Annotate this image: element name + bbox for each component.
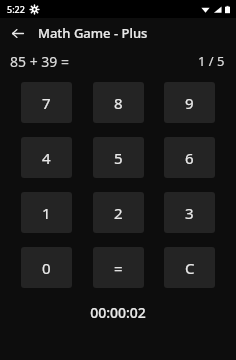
button[interactable]: 4 bbox=[21, 137, 72, 178]
staticText: 85 + 39 = bbox=[10, 52, 69, 71]
staticText: 0 bbox=[42, 258, 51, 278]
button[interactable]: C bbox=[164, 247, 215, 288]
staticText: 5 bbox=[114, 148, 123, 168]
staticText: 3 bbox=[185, 203, 194, 223]
staticText: Math Game - Plus bbox=[38, 24, 148, 42]
button[interactable]: 0 bbox=[21, 247, 72, 288]
staticText: = bbox=[114, 258, 123, 278]
button[interactable]: 6 bbox=[164, 137, 215, 178]
button[interactable]: 1 bbox=[21, 192, 72, 233]
staticText: 7 bbox=[42, 93, 51, 113]
button[interactable]: 9 bbox=[164, 82, 215, 123]
button[interactable]: 5 bbox=[93, 137, 144, 178]
button[interactable]: 7 bbox=[21, 82, 72, 123]
staticText: 2 bbox=[114, 203, 123, 223]
button[interactable]: = bbox=[93, 247, 144, 288]
staticText: 6 bbox=[185, 148, 194, 168]
staticText: 4 bbox=[42, 148, 51, 168]
button[interactable]: 2 bbox=[93, 192, 144, 233]
staticText: 00:00:02 bbox=[0, 303, 236, 322]
button[interactable]: 8 bbox=[93, 82, 144, 123]
staticText: C bbox=[185, 258, 195, 278]
staticText: 1 bbox=[42, 203, 51, 223]
staticText: 5:22 bbox=[7, 3, 25, 15]
button[interactable]: 3 bbox=[164, 192, 215, 233]
button[interactable]: Back bbox=[5, 21, 29, 45]
staticText: 9 bbox=[185, 93, 194, 113]
staticText: 1 / 5 bbox=[198, 52, 225, 70]
staticText: 8 bbox=[114, 93, 123, 113]
